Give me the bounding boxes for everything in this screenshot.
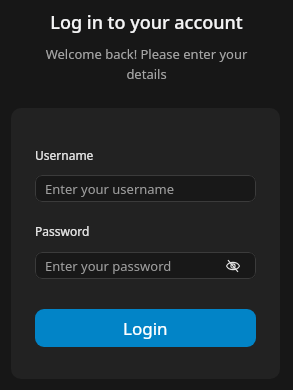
button[interactable]: Login (35, 309, 256, 347)
staticText: Username (35, 147, 94, 163)
button[interactable]: Enter your password (35, 252, 256, 279)
staticText: Password (35, 223, 90, 239)
button[interactable]: Enter your username (35, 175, 256, 202)
staticText: Enter your password (45, 257, 226, 275)
staticText: Welcome back! Please enter your details (0, 45, 293, 83)
staticText: Log in to your account (0, 10, 293, 35)
staticText: Login (123, 317, 168, 340)
staticText: Enter your username (45, 180, 256, 198)
